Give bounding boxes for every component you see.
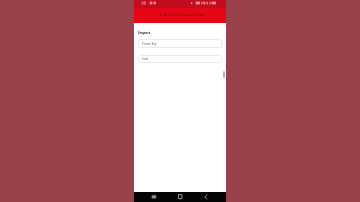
button[interactable]: Seed (138, 55, 222, 63)
button[interactable]: Recent apps (144, 192, 164, 202)
button[interactable]: Back (196, 192, 216, 202)
staticText: Import (138, 30, 151, 35)
button[interactable]: I already have a wallet (134, 8, 226, 24)
button[interactable]: Private Key (138, 39, 222, 48)
button[interactable]: Home (170, 192, 190, 202)
staticText: Private Key (142, 42, 157, 46)
staticText: Seed (142, 57, 149, 61)
staticText: I already have a wallet (160, 11, 205, 17)
